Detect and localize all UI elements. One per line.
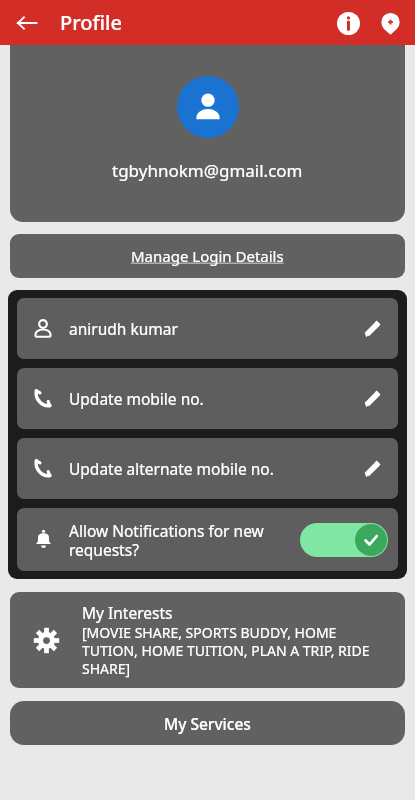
staticText: Manage Login Details bbox=[131, 246, 284, 266]
staticText: anirudh kumar bbox=[69, 318, 346, 339]
staticText: My Interests bbox=[82, 602, 173, 623]
staticText: My Services bbox=[164, 713, 251, 734]
staticText: Profile bbox=[60, 9, 122, 36]
staticText: Update alternate mobile no. bbox=[69, 458, 346, 479]
button[interactable]: My Interests bbox=[10, 592, 405, 688]
button[interactable]: Update mobile no. bbox=[17, 368, 398, 429]
button[interactable]: Manage Login Details bbox=[10, 234, 405, 278]
button[interactable]: Add location bbox=[369, 2, 411, 44]
button[interactable]: Information bbox=[327, 2, 369, 44]
staticText: [MOVIE SHARE, SPORTS BUDDY, HOME TUTION,… bbox=[82, 623, 393, 678]
button[interactable]: anirudh kumar bbox=[17, 298, 398, 359]
button[interactable]: tgbyhnokm@gmail.com bbox=[10, 45, 405, 222]
button[interactable]: Allow notifications toggle, on bbox=[300, 523, 388, 557]
button[interactable]: Update alternate mobile no. bbox=[17, 438, 398, 499]
staticText: Allow Notifications for new requests? bbox=[69, 520, 292, 560]
button[interactable]: Back bbox=[6, 2, 48, 44]
staticText: Update mobile no. bbox=[69, 388, 346, 409]
staticText: tgbyhnokm@gmail.com bbox=[112, 159, 303, 182]
button[interactable]: My Services bbox=[10, 701, 405, 745]
